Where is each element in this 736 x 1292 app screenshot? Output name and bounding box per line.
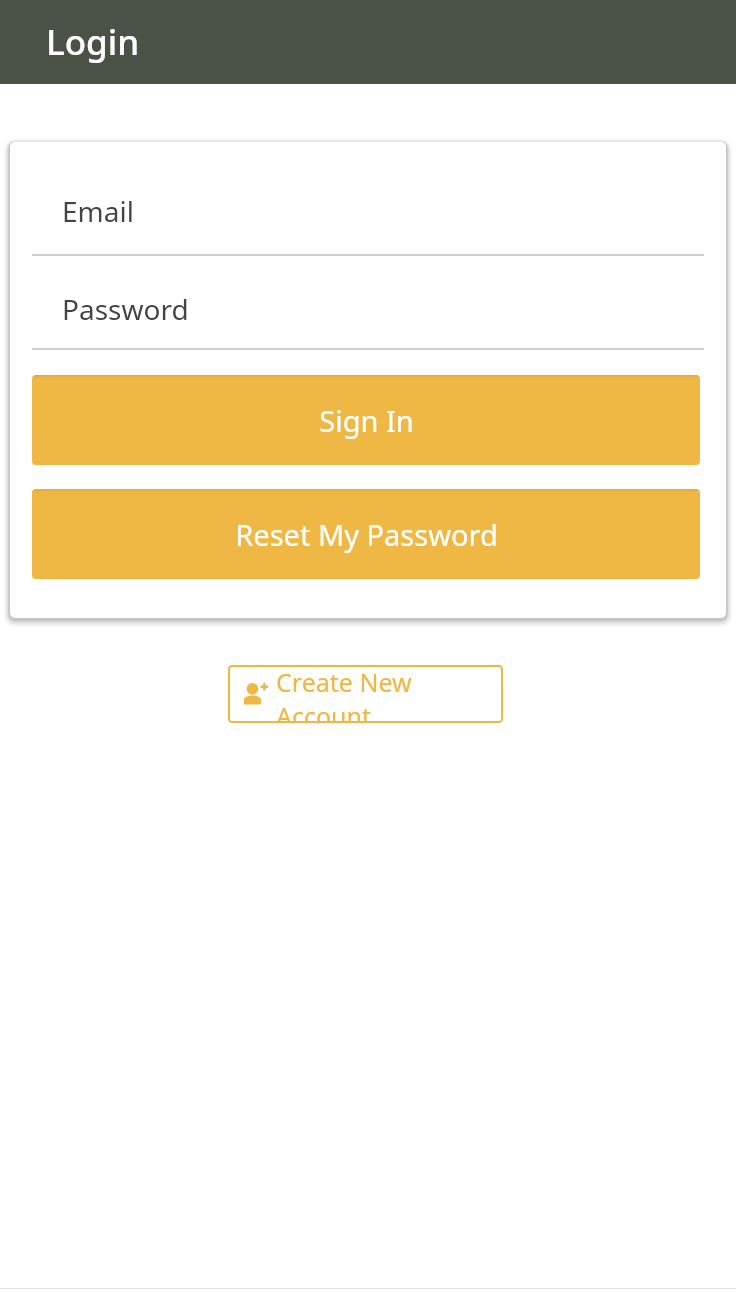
staticText: Email: [62, 192, 134, 230]
staticText: Create New Account: [276, 665, 489, 723]
button[interactable]: Create New Account: [228, 665, 503, 723]
button[interactable]: Sign In: [32, 375, 700, 465]
button[interactable]: Email: [10, 142, 726, 256]
staticText: Sign In: [319, 401, 414, 440]
staticText: Login: [46, 18, 140, 66]
button[interactable]: Password: [10, 256, 726, 350]
staticText: Password: [62, 290, 189, 328]
other: Create New Account: [242, 681, 268, 707]
button[interactable]: Reset My Password: [32, 489, 700, 579]
staticText: Reset My Password: [235, 515, 498, 554]
